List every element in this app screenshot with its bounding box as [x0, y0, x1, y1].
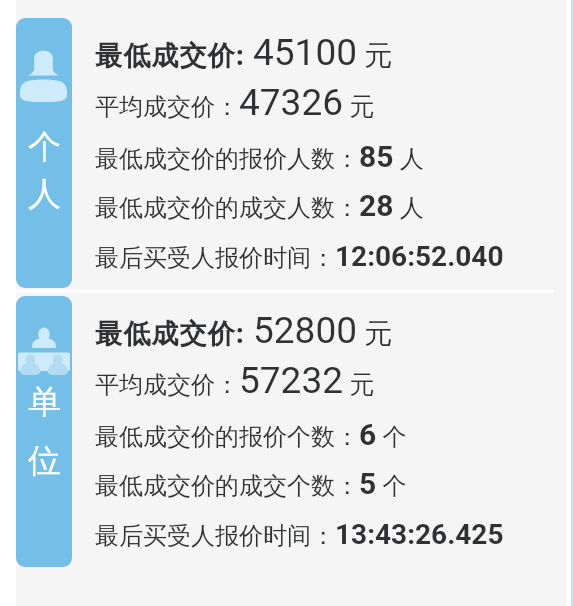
- staticText: 最低成交价的报价人数：85 人: [95, 139, 424, 174]
- button[interactable]: 最低成交价: 45100 元: [95, 18, 555, 61]
- staticText: 最后买受人报价时间：12:06:52.040: [95, 240, 504, 273]
- staticText: 最后买受人报价时间：13:43:26.425: [95, 518, 504, 551]
- button[interactable]: 个人: [16, 18, 72, 288]
- staticText: 个: [28, 126, 61, 168]
- staticText: 最低成交价的报价个数：6 个: [95, 417, 407, 452]
- button[interactable]: 单位: [16, 296, 72, 567]
- staticText: 平均成交价：47326 元: [95, 81, 375, 124]
- staticText: 人: [28, 173, 61, 215]
- staticText: 最低成交价: 45100 元: [95, 31, 393, 74]
- staticText: 单: [28, 381, 61, 423]
- staticText: 位: [28, 440, 61, 482]
- staticText: 最低成交价的成交人数：28 人: [95, 188, 424, 223]
- button[interactable]: 最低成交价: 52800 元: [95, 296, 555, 339]
- staticText: 最低成交价: 52800 元: [95, 309, 393, 352]
- staticText: 最低成交价的成交个数：5 个: [95, 466, 407, 501]
- staticText: 平均成交价：57232 元: [95, 359, 375, 402]
